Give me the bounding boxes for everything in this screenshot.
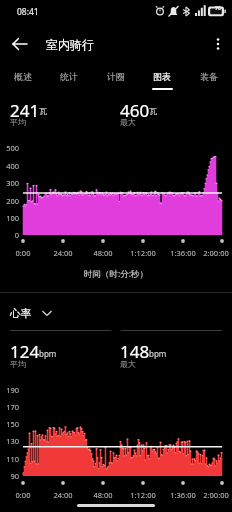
staticText: 460 [120,99,150,122]
staticText: 2:00:00 [192,490,232,500]
staticText: 170 [0,402,19,412]
staticText: 0:00 [0,248,47,258]
staticText: 76 [212,4,224,11]
staticText: 48:00 [79,490,127,500]
staticText: 室内骑行 [46,37,94,52]
staticText: 平均 [10,359,26,369]
button[interactable]: More options [206,28,230,60]
staticText: 124 [10,340,40,363]
staticText: 1:36:00 [159,248,207,258]
staticText: 148 [120,340,150,363]
staticText: 08:41 [17,6,39,18]
staticText: 24:00 [39,248,87,258]
staticText: 1:36:00 [159,490,207,500]
staticText: 瓦 [149,106,157,116]
staticText: 最大 [120,359,136,369]
staticText: 计圈 [107,71,125,82]
staticText: 48:00 [79,248,127,258]
staticText: 最大 [120,117,136,127]
staticText: 500 [0,143,19,153]
button[interactable]: 心率 [6,302,66,324]
staticText: 100 [0,213,19,223]
staticText: 400 [0,161,19,171]
staticText: 概述 [14,71,32,82]
staticText: 1:12:00 [119,490,167,500]
button[interactable]: 装备 [186,64,232,92]
button[interactable]: 统计 [46,64,92,92]
button[interactable]: 概述 [0,64,46,92]
staticText: 200 [0,196,19,206]
button[interactable]: Back [4,28,36,60]
staticText: 90 [0,471,19,481]
staticText: 110 [0,454,19,464]
staticText: 190 [0,385,19,395]
staticText: 瓦 [39,106,47,116]
staticText: 图表 [153,71,171,82]
staticText: 时间（时:分:秒） [0,268,232,280]
staticText: 130 [0,436,19,446]
staticText: 统计 [60,71,78,82]
staticText: 1:12:00 [119,248,167,258]
staticText: 24:00 [39,490,87,500]
staticText: 0 [0,230,19,240]
staticText: bpm [39,348,57,359]
staticText: 装备 [200,71,218,82]
staticText: 2:00:00 [192,248,232,258]
button[interactable]: 计圈 [93,64,139,92]
button[interactable]: 图表 [139,64,185,92]
staticText: 300 [0,178,19,188]
staticText: 0:00 [0,490,47,500]
staticText: 241 [10,99,40,122]
staticText: bpm [149,348,167,359]
staticText: 平均 [10,117,26,127]
staticText: 心率 [10,307,31,320]
staticText: 150 [0,419,19,429]
